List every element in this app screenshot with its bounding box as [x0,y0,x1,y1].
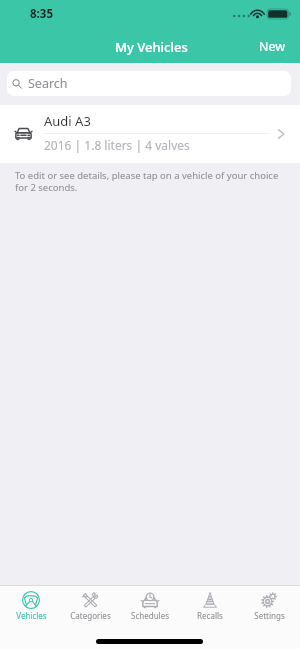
staticText: New [259,38,286,55]
staticText: Categories [70,610,111,621]
staticText: 8:35 [30,6,53,22]
button[interactable]: Audi A3 [0,105,300,163]
staticText: My Vehicles [115,38,188,56]
button[interactable]: Search [7,71,291,96]
staticText: Settings [254,610,285,621]
button[interactable]: Recalls [181,585,239,621]
button[interactable]: New [249,0,300,61]
staticText: Audi A3 [44,112,91,130]
staticText: To edit or see details, please tap on a … [15,169,284,193]
staticText: 2016 | 1.8 liters | 4 valves [44,137,190,153]
staticText: Schedules [131,610,169,621]
button[interactable]: Vehicles [2,585,60,621]
staticText: Recalls [197,610,223,621]
staticText: Vehicles [16,610,47,621]
button[interactable]: Settings [240,585,298,621]
button[interactable]: Schedules [121,585,179,621]
staticText: Search [28,75,68,92]
button[interactable]: Categories [61,585,119,621]
